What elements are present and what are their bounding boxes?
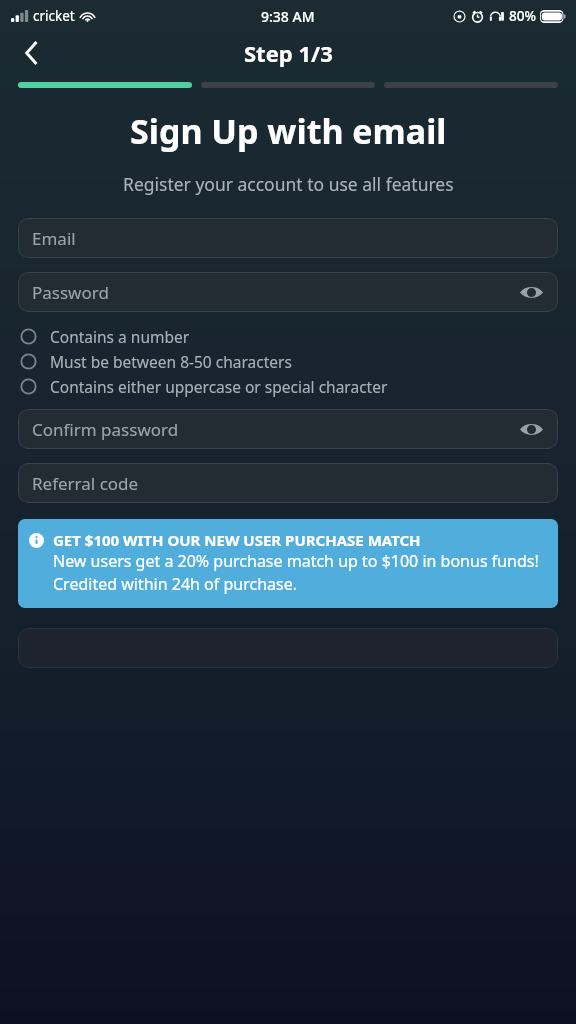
staticText: 9:38 AM <box>261 7 315 26</box>
button[interactable] <box>18 628 558 668</box>
staticText: Sign Up with email <box>130 108 447 154</box>
staticText: Register your account to use all feature… <box>123 172 454 196</box>
staticText: New users get a 20% purchase match up to… <box>53 550 544 595</box>
staticText: GET $100 WITH OUR NEW USER PURCHASE MATC… <box>53 530 421 550</box>
staticText: 80% <box>509 7 536 25</box>
button[interactable]: Back <box>10 32 54 74</box>
staticText: Contains either uppercase or special cha… <box>50 376 388 397</box>
staticText: cricket <box>33 7 75 25</box>
button[interactable]: Contains a number <box>20 324 556 349</box>
staticText: Step 1/3 <box>244 38 333 68</box>
staticText: Contains a number <box>50 326 190 347</box>
staticText: Must be between 8-50 characters <box>50 351 292 372</box>
staticText: Email <box>32 227 76 250</box>
button[interactable]: Referral code <box>18 463 558 503</box>
staticText: Password <box>32 281 109 304</box>
button[interactable]: Confirm password <box>18 409 558 449</box>
staticText: Confirm password <box>32 418 179 441</box>
button[interactable]: GET $100 WITH OUR NEW USER PURCHASE MATC… <box>18 519 558 608</box>
button[interactable]: Email <box>18 218 558 258</box>
button[interactable]: Show password <box>516 414 546 444</box>
staticText: Referral code <box>32 472 139 495</box>
button[interactable]: Contains either uppercase or special cha… <box>20 374 556 399</box>
button[interactable]: Password <box>18 272 558 312</box>
button[interactable]: Must be between 8-50 characters <box>20 349 556 374</box>
button[interactable]: Show password <box>516 277 546 307</box>
